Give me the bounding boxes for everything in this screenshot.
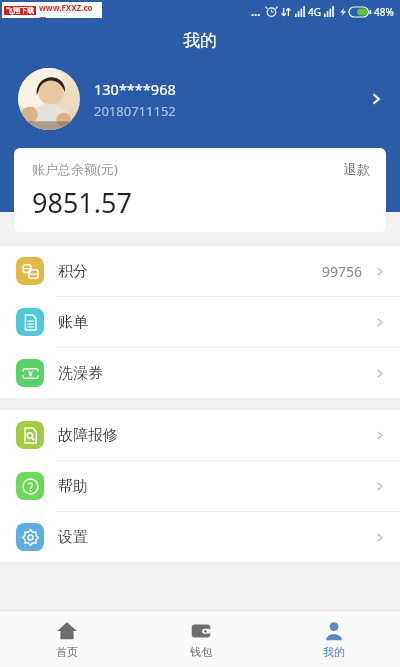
staticText: 故障报修 [58,426,118,445]
staticText: 48% [374,5,394,19]
staticText: 我的 [183,30,217,51]
staticText: 退款 [344,161,370,177]
staticText: 飞翔下载 [6,6,34,15]
staticText: 20180711152 [94,102,176,120]
button[interactable]: 积分 [0,246,400,296]
button[interactable]: 钱包 [134,620,267,659]
button[interactable]: 130****968 [0,58,400,140]
button[interactable]: 设置 [0,512,400,562]
button[interactable]: 账单 [0,297,400,347]
staticText: 9851.57 [32,184,132,221]
staticText: 4G [308,5,321,19]
staticText: 积分 [58,262,88,281]
staticText: 设置 [58,528,88,547]
button[interactable]: 我的 [267,620,400,659]
button[interactable]: 故障报修 [0,410,400,460]
staticText: 130****968 [94,79,176,99]
staticText: 钱包 [190,645,212,659]
button[interactable]: 账户总余额(元) [14,148,386,232]
staticText: … [251,4,261,19]
button[interactable]: 洗澡券 [0,348,400,398]
staticText: 帮助 [58,477,88,496]
button[interactable]: 退款 [344,161,370,177]
staticText: 我的 [323,645,345,659]
staticText: 首页 [56,645,78,659]
staticText: www.FXXZ.com [39,2,100,18]
staticText: 99756 [322,262,363,281]
staticText: 账单 [58,313,88,332]
button[interactable]: 首页 [0,620,134,659]
button[interactable]: 帮助 [0,461,400,511]
staticText: 账户总余额(元) [32,160,118,178]
other: Profile details [368,91,384,107]
staticText: 洗澡券 [58,364,103,383]
